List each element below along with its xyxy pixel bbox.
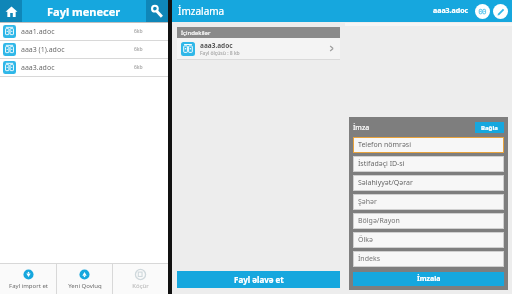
button[interactable]: İndeks: [353, 251, 504, 267]
button[interactable]: aaa3.adoc: [177, 38, 340, 59]
staticText: 6kb: [134, 28, 143, 35]
staticText: aaa3.adoc: [21, 63, 55, 73]
staticText: Fayl əlavə et: [234, 274, 284, 285]
staticText: Səlahiyyət/Qərar: [358, 178, 413, 188]
button[interactable]: Settings: [146, 0, 168, 22]
staticText: Yeni Qovluq: [68, 282, 102, 290]
button[interactable]: Ölkə: [353, 232, 504, 248]
button[interactable]: Document: [475, 4, 490, 19]
button[interactable]: Home: [0, 0, 22, 22]
button[interactable]: Səlahiyyət/Qərar: [353, 175, 504, 191]
staticText: aaa3.adoc: [433, 6, 469, 16]
button[interactable]: İmzala: [353, 272, 504, 286]
staticText: Fayl import et: [9, 282, 48, 290]
button[interactable]: Fayl import et: [0, 264, 56, 294]
button[interactable]: aaa1.adoc: [0, 23, 168, 40]
button[interactable]: Bölgə/Rayon: [353, 213, 504, 229]
button[interactable]: Edit: [493, 4, 508, 19]
staticText: Bölgə/Rayon: [358, 216, 400, 226]
button[interactable]: aaa3.adoc: [0, 59, 168, 76]
staticText: İmza: [353, 123, 370, 133]
staticText: İmzalama: [178, 4, 225, 18]
button[interactable]: Şəhər: [353, 194, 504, 210]
staticText: Bağla: [481, 124, 498, 132]
staticText: İçindəkilər: [181, 29, 211, 37]
staticText: Fayl ölçüsü : 8 kb: [200, 50, 240, 57]
staticText: İndeks: [358, 254, 381, 264]
staticText: 6kb: [134, 46, 143, 53]
button[interactable]: Bağla: [475, 122, 504, 133]
staticText: aaa3 (1).adoc: [21, 45, 65, 55]
staticText: Fayl menecer: [47, 4, 121, 19]
button[interactable]: Köçür: [113, 264, 168, 294]
button[interactable]: Telefon nömrəsi: [353, 137, 504, 153]
button[interactable]: İstifadəçi ID-si: [353, 156, 504, 172]
staticText: Köçür: [132, 282, 149, 290]
staticText: aaa3.adoc: [200, 41, 233, 50]
staticText: İstifadəçi ID-si: [358, 159, 405, 169]
staticText: Şəhər: [358, 197, 377, 207]
staticText: İmzala: [417, 274, 441, 284]
button[interactable]: Yeni Qovluq: [57, 264, 112, 294]
button[interactable]: Fayl əlavə et: [177, 271, 340, 288]
staticText: Telefon nömrəsi: [358, 140, 411, 150]
button[interactable]: aaa3 (1).adoc: [0, 41, 168, 58]
staticText: 6kb: [134, 64, 143, 71]
staticText: Ölkə: [358, 235, 373, 245]
staticText: aaa1.adoc: [21, 27, 55, 37]
